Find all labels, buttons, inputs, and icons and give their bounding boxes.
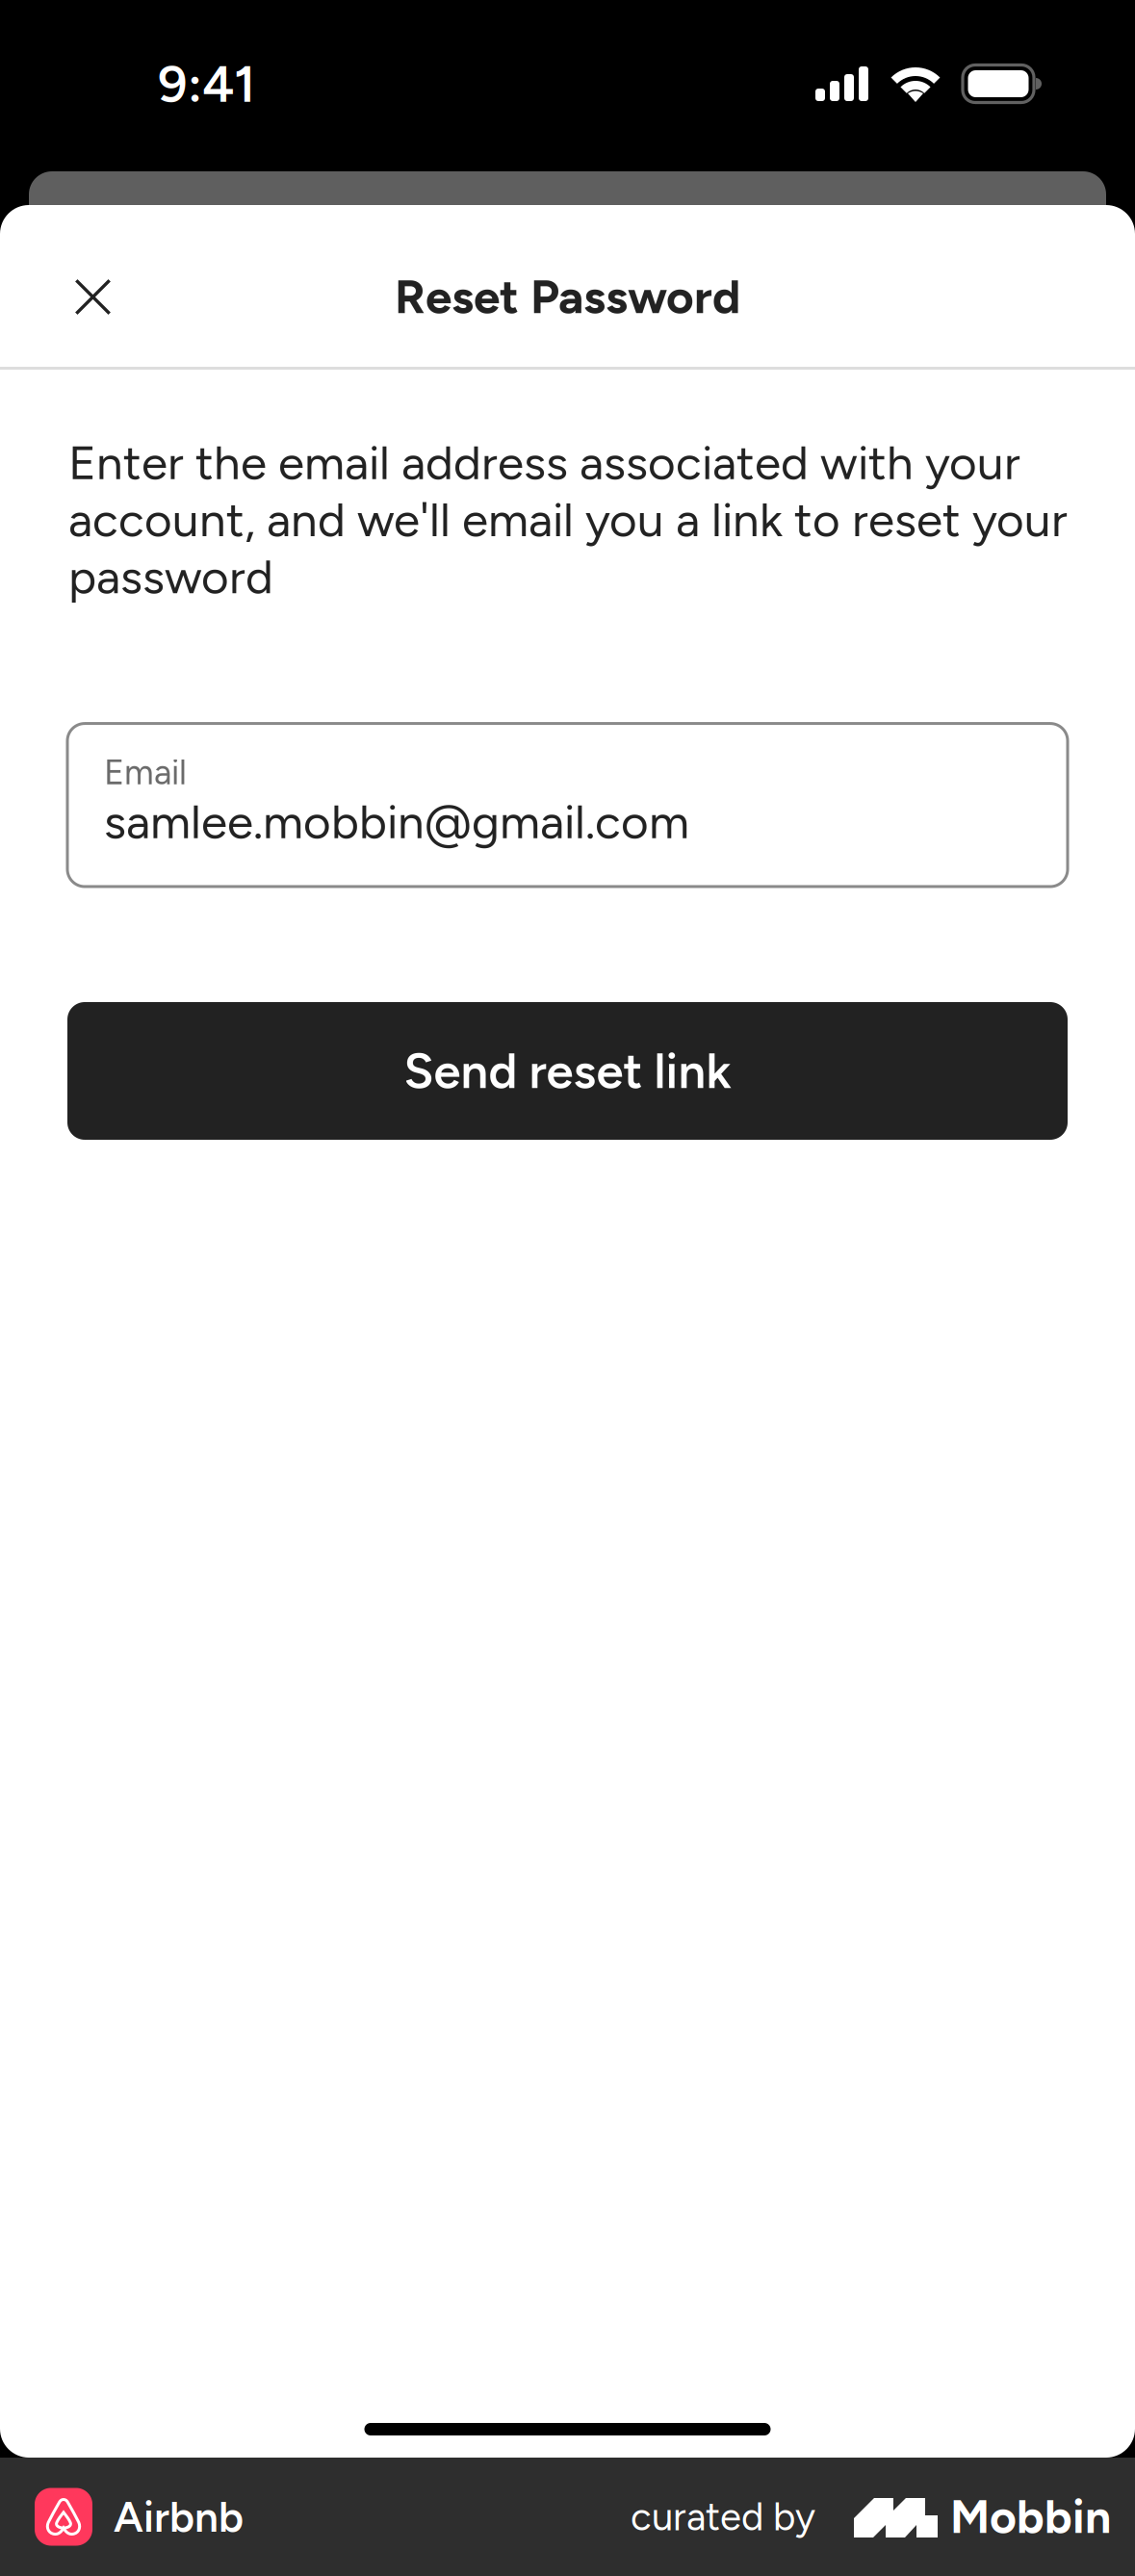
- staticText: Airbnb: [114, 2491, 244, 2542]
- staticText: Reset Password: [395, 268, 740, 325]
- staticText: Send reset link: [404, 1042, 731, 1100]
- button[interactable]: Send reset link: [67, 1002, 1068, 1140]
- staticText: samlee.mobbin@gmail.com: [104, 793, 689, 850]
- staticText: Enter the email address associated with …: [68, 434, 1068, 605]
- button[interactable]: Close: [55, 259, 130, 334]
- staticText: Mobbin: [950, 2489, 1111, 2545]
- staticText: 9:41: [158, 53, 255, 115]
- staticText: curated by: [631, 2494, 815, 2540]
- staticText: Email: [104, 751, 187, 793]
- button[interactable]: Email: [67, 724, 1068, 887]
